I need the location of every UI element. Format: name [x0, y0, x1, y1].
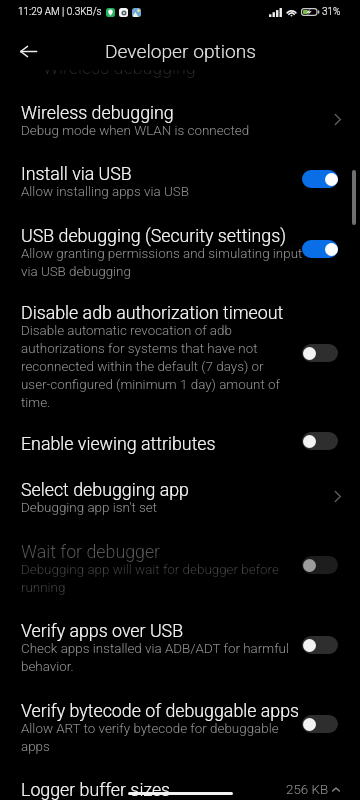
button[interactable]: Wait for debugger [0, 528, 360, 608]
staticText: Allow granting permissions and simulatin… [21, 246, 305, 279]
button[interactable]: Disabled [298, 709, 342, 739]
staticText: Verify bytecode of debuggable apps [21, 700, 300, 721]
staticText: Wireless debugging [21, 102, 174, 123]
button[interactable]: USB debugging (Security settings) [0, 212, 360, 292]
button[interactable]: Enabled [298, 164, 342, 194]
button[interactable]: Open [324, 483, 350, 509]
button[interactable]: Enabled [298, 234, 342, 264]
staticText: Install via USB [21, 163, 132, 184]
button[interactable]: Enable viewing attributes [0, 420, 360, 467]
staticText: Allow ART to verify bytecode for debugga… [21, 721, 305, 754]
staticText: USB debugging (Security settings) [21, 225, 286, 246]
button[interactable]: Logger buffer sizes [0, 767, 360, 800]
staticText: 31% [322, 6, 341, 18]
staticText: Debugging app isn't set [21, 500, 158, 516]
button[interactable]: Disabled [298, 630, 342, 660]
staticText: Disable adb authorization timeout [21, 302, 284, 323]
button[interactable]: Verify bytecode of debuggable apps [0, 687, 360, 767]
button[interactable]: Verify apps over USB [0, 608, 360, 687]
staticText: 11:29 AM | 0.3KB/s [18, 6, 102, 18]
button[interactable]: Disable adb authorization timeout [0, 292, 360, 420]
button[interactable]: Install via USB [0, 151, 360, 212]
button[interactable]: Back [10, 33, 46, 69]
staticText: Debug mode when WLAN is connected [21, 123, 250, 139]
staticText: Wireless debugging [43, 70, 196, 78]
staticText: Allow installing apps via USB [21, 184, 189, 200]
staticText: Developer options [105, 40, 257, 63]
staticText: Select debugging app [21, 479, 189, 500]
staticText: Wait for debugger [21, 541, 161, 562]
button[interactable]: Open [324, 106, 350, 132]
button[interactable]: Disabled [298, 426, 342, 456]
staticText: Debugging app will wait for debugger bef… [21, 562, 305, 595]
staticText: Logger buffer sizes [21, 779, 171, 800]
staticText: Enable viewing attributes [21, 433, 216, 454]
button[interactable]: Disabled [298, 338, 342, 368]
staticText: Check apps installed via ADB/ADT for har… [21, 641, 305, 674]
button[interactable]: Select debugging app [0, 467, 360, 528]
button[interactable]: Disabled [298, 550, 342, 580]
staticText: Disable automatic revocation of adb auth… [21, 323, 305, 410]
staticText: 256 KB [286, 782, 329, 798]
button[interactable]: Wireless debugging [0, 90, 360, 151]
staticText: Verify apps over USB [21, 620, 184, 641]
